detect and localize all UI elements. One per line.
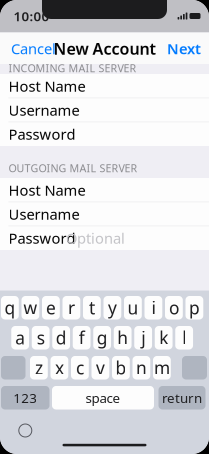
staticText: h [117, 326, 128, 349]
button[interactable]: g [93, 326, 111, 349]
button[interactable]: d [52, 326, 70, 349]
button[interactable]: s [32, 326, 50, 349]
staticText: Username [8, 100, 79, 120]
button[interactable]: o [165, 296, 183, 319]
staticText: Cancel [11, 39, 56, 58]
staticText: m [154, 356, 170, 379]
button[interactable]: return [158, 386, 205, 409]
button[interactable]: 123 [1, 386, 49, 409]
button[interactable]: w [21, 296, 39, 319]
button[interactable]: r [62, 296, 80, 319]
staticText: v [96, 356, 105, 379]
button[interactable]: v [91, 356, 109, 379]
staticText: INCOMING MAIL SERVER [8, 61, 136, 75]
staticText: r [68, 296, 75, 319]
staticText: y [108, 296, 117, 319]
button[interactable]: e [42, 296, 60, 319]
staticText: f [79, 326, 85, 349]
staticText: OUTGOING MAIL SERVER [8, 161, 137, 175]
button[interactable]: i [144, 296, 162, 319]
staticText: n [136, 356, 147, 379]
staticText: e [46, 296, 56, 319]
button[interactable]: a [11, 326, 29, 349]
button[interactable]: space [52, 386, 154, 409]
staticText: Host Name [8, 180, 85, 200]
staticText: b [115, 356, 126, 379]
staticText: o [169, 296, 179, 319]
button[interactable] [1, 356, 25, 379]
button[interactable]: k [155, 326, 173, 349]
button[interactable]: Emoji [19, 424, 32, 437]
staticText: Password [8, 124, 75, 144]
button[interactable]: x [50, 356, 68, 379]
staticText: space [85, 389, 120, 407]
staticText: i [151, 296, 155, 319]
staticText: j [141, 326, 145, 349]
staticText: return [162, 389, 202, 407]
staticText: Next [167, 39, 201, 58]
staticText: Username [8, 204, 79, 224]
staticText: g [97, 326, 108, 349]
staticText: z [35, 356, 43, 379]
staticText: s [37, 326, 45, 349]
staticText: q [4, 296, 15, 319]
button[interactable]: m [153, 356, 171, 379]
staticText: Password [8, 228, 75, 248]
button[interactable]: Next [0, 0, 209, 454]
staticText: u [127, 296, 138, 319]
button[interactable]: n [132, 356, 150, 379]
button[interactable]: q [1, 296, 19, 319]
button[interactable] [182, 356, 207, 379]
staticText: l [182, 326, 186, 349]
button[interactable]: b [112, 356, 130, 379]
button[interactable]: Cancel [0, 0, 209, 454]
button[interactable]: f [73, 326, 91, 349]
staticText: p [189, 296, 200, 319]
button[interactable]: c [71, 356, 89, 379]
staticText: New Account [53, 38, 155, 59]
button[interactable]: j [134, 326, 152, 349]
button[interactable]: t [83, 296, 101, 319]
staticText: x [55, 356, 64, 379]
staticText: a [15, 326, 25, 349]
button[interactable]: h [114, 326, 132, 349]
staticText: t [89, 296, 95, 319]
staticText: Host Name [8, 76, 85, 96]
staticText: w [23, 296, 37, 319]
staticText: k [159, 326, 168, 349]
button[interactable]: p [185, 296, 203, 319]
staticText: c [76, 356, 84, 379]
button[interactable]: z [30, 356, 48, 379]
button[interactable]: l [175, 326, 193, 349]
staticText: 10:00 [13, 7, 49, 25]
staticText: Optional [66, 228, 125, 248]
button[interactable]: y [103, 296, 121, 319]
staticText: d [56, 326, 67, 349]
staticText: 123 [13, 389, 37, 407]
button[interactable]: u [124, 296, 142, 319]
